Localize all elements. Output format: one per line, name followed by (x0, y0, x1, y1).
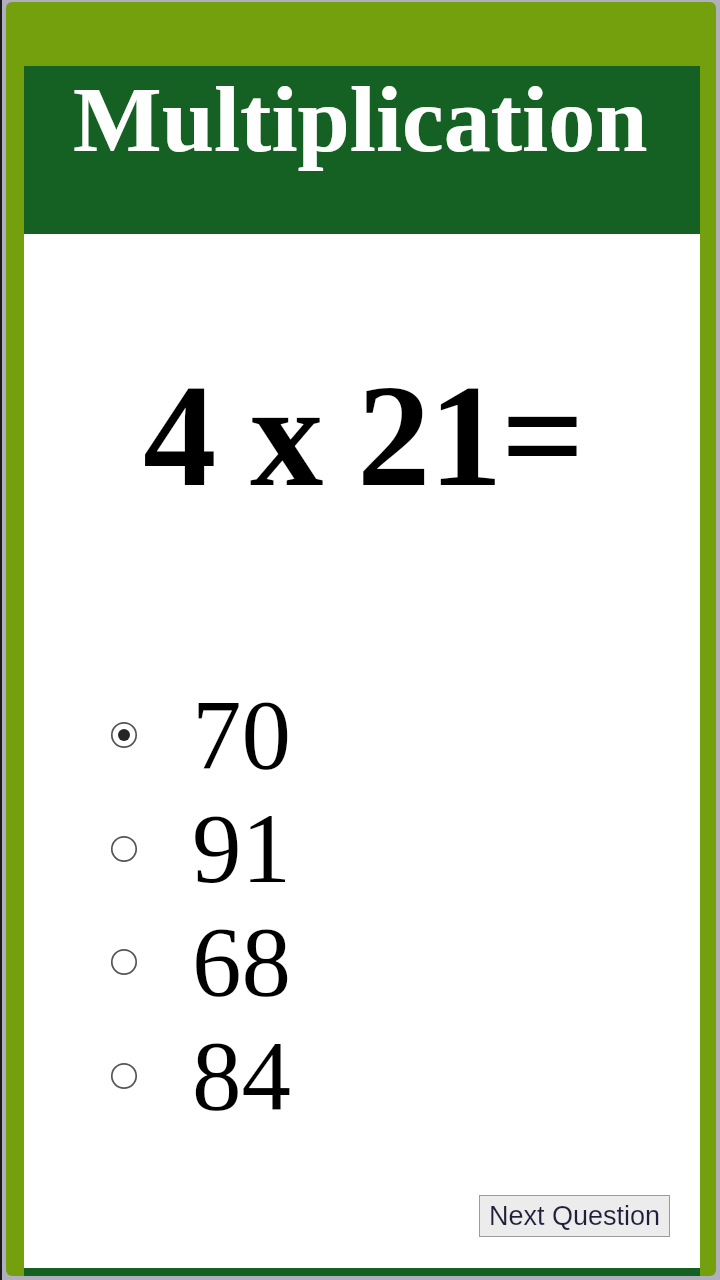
staticText: 70 (192, 680, 291, 790)
toggle[interactable]: 91 (24, 793, 700, 905)
staticText: 84 (192, 1021, 291, 1131)
toggle[interactable]: 68 (24, 906, 700, 1018)
toggle[interactable]: 70 (24, 679, 700, 791)
staticText: Next Question (489, 1201, 661, 1231)
staticText: Multiplication (73, 67, 648, 171)
toggle[interactable]: 84 (24, 1020, 700, 1132)
staticText: 91 (192, 794, 291, 904)
button[interactable]: Next Question (480, 1196, 669, 1236)
staticText: 4 x 21= (143, 354, 584, 517)
staticText: 68 (192, 907, 291, 1017)
